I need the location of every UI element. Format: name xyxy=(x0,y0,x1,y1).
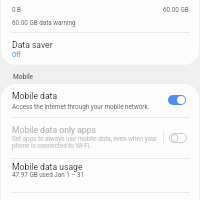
staticText: Access the internet through your mobile … xyxy=(12,103,150,110)
button[interactable]: Mobile data, on xyxy=(168,95,186,105)
staticText: 60.00 GB data warning xyxy=(12,19,76,26)
staticText: Set apps to always use mobile data, even… xyxy=(12,135,160,149)
staticText: Data saver xyxy=(12,40,53,50)
staticText: Mobile xyxy=(13,73,34,81)
staticText: 60.00 GB xyxy=(163,6,189,13)
staticText: Mobile data only apps xyxy=(12,125,96,135)
staticText: 0 B xyxy=(12,6,22,13)
staticText: Mobile data usage xyxy=(12,162,83,172)
button[interactable]: Data saver xyxy=(1,33,199,65)
staticText: Off xyxy=(12,51,21,58)
button[interactable]: Mobile data usage xyxy=(1,159,199,192)
staticText: Mobile data xyxy=(12,91,58,101)
staticText: 47.97 GB used Jan 1 – 31 xyxy=(12,171,85,178)
button[interactable]: Mobile data xyxy=(1,84,199,117)
button[interactable]: Mobile data only apps, off xyxy=(169,133,187,143)
